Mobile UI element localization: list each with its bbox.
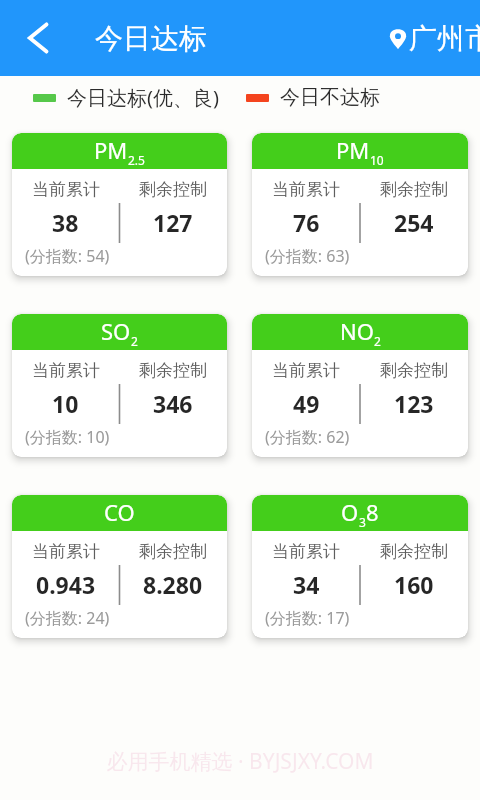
button[interactable]: PM — [252, 133, 468, 276]
staticText: 0.943 — [36, 569, 96, 600]
staticText: 广州市 — [409, 21, 480, 56]
button[interactable]: Location — [387, 21, 480, 56]
button[interactable]: CO — [12, 495, 227, 638]
staticText: 123 — [394, 388, 434, 419]
staticText: 10 — [52, 388, 79, 419]
staticText: 49 — [293, 388, 320, 419]
staticText: PM — [336, 135, 370, 165]
staticText: 38 — [52, 207, 79, 238]
staticText: 3 — [359, 514, 366, 530]
staticText: NO — [340, 316, 374, 346]
staticText: 2.5 — [128, 152, 145, 168]
staticText: 今日达标(优、良) — [67, 84, 219, 111]
staticText: 76 — [293, 207, 320, 238]
staticText: 必用手机精选 · BYJSJXY.COM — [0, 747, 480, 776]
button[interactable]: O — [252, 495, 468, 638]
staticText: 当前累计 — [32, 360, 100, 381]
staticText: 当前累计 — [272, 360, 340, 381]
staticText: 今日不达标 — [280, 85, 380, 110]
staticText: SO — [101, 316, 131, 346]
staticText: (分指数: 24) — [25, 607, 110, 629]
staticText: 剩余控制 — [139, 541, 207, 562]
staticText: 2 — [374, 333, 381, 349]
staticText: 当前累计 — [32, 179, 100, 200]
staticText: 160 — [394, 569, 434, 600]
staticText: (分指数: 54) — [25, 245, 110, 267]
staticText: 34 — [293, 569, 320, 600]
staticText: 剩余控制 — [139, 179, 207, 200]
staticText: 剩余控制 — [139, 360, 207, 381]
staticText: 2 — [131, 333, 138, 349]
staticText: CO — [104, 497, 135, 527]
staticText: O — [341, 497, 359, 527]
button[interactable]: Back — [14, 14, 62, 62]
staticText: 346 — [153, 388, 193, 419]
staticText: 今日达标 — [95, 21, 207, 56]
staticText: 127 — [153, 207, 193, 238]
staticText: (分指数: 10) — [25, 426, 110, 448]
staticText: (分指数: 17) — [265, 607, 350, 629]
button[interactable]: NO — [252, 314, 468, 457]
staticText: 剩余控制 — [380, 179, 448, 200]
staticText: 8.280 — [143, 569, 203, 600]
staticText: (分指数: 63) — [265, 245, 350, 267]
other: Location — [387, 28, 409, 50]
staticText: 当前累计 — [272, 541, 340, 562]
staticText: 剩余控制 — [380, 541, 448, 562]
staticText: 10 — [370, 152, 384, 168]
button[interactable]: SO — [12, 314, 227, 457]
staticText: 当前累计 — [272, 179, 340, 200]
staticText: PM — [94, 135, 128, 165]
staticText: (分指数: 62) — [265, 426, 350, 448]
staticText: 254 — [394, 207, 434, 238]
staticText: 8 — [366, 497, 379, 527]
staticText: 当前累计 — [32, 541, 100, 562]
staticText: 剩余控制 — [380, 360, 448, 381]
button[interactable]: PM — [12, 133, 227, 276]
